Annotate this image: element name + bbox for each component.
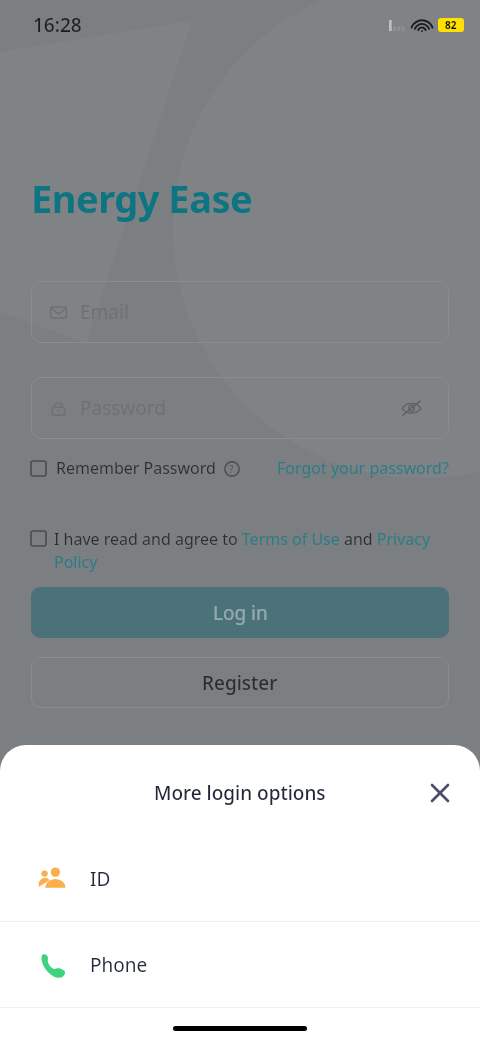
staticText: Register — [202, 670, 278, 696]
staticText: Email — [80, 299, 129, 325]
staticText: 82 — [445, 18, 457, 32]
staticText: ID — [90, 866, 111, 892]
button[interactable]: Show password — [397, 394, 425, 422]
staticText: Energy Ease — [31, 172, 253, 224]
button[interactable]: Email — [31, 281, 449, 343]
staticText: Log in — [213, 600, 268, 626]
button[interactable]: Help — [223, 460, 240, 477]
staticText: More login options — [154, 780, 326, 806]
button[interactable]: Password — [31, 377, 449, 439]
button[interactable]: Forgot your password? — [277, 457, 449, 479]
button[interactable]: Log in — [31, 587, 449, 638]
staticText: Remember Password — [56, 457, 216, 479]
button[interactable]: Phone — [0, 922, 480, 1007]
staticText: I have read and agree to Terms of Use an… — [54, 528, 449, 573]
staticText: 16:28 — [33, 12, 82, 38]
button[interactable]: Close — [422, 775, 458, 811]
button[interactable]: ID — [0, 836, 480, 921]
staticText: Password — [80, 395, 166, 421]
staticText: ? — [229, 462, 234, 476]
button[interactable]: Remember Password — [31, 457, 240, 479]
button[interactable]: Register — [31, 657, 449, 708]
button[interactable]: I have read and agree to Terms of Use an… — [31, 528, 449, 573]
staticText: Phone — [90, 952, 148, 978]
